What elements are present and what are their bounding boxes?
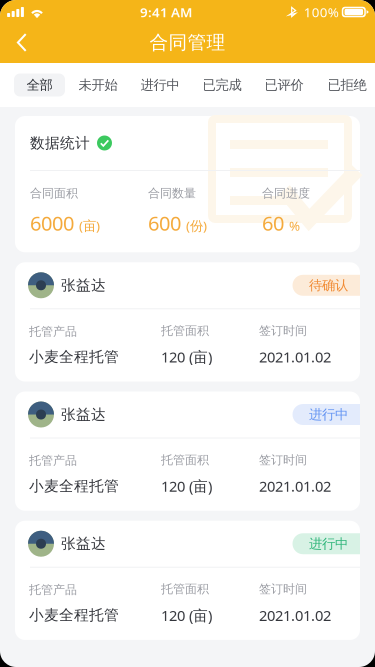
staticText: 托管产品 [29,324,77,339]
staticText: 待确认 [309,277,348,293]
staticText: 已拒绝 [327,77,366,93]
button[interactable]: 已拒绝 [326,73,368,96]
staticText: 托管面积 [161,582,209,596]
staticText: 合同进度 [262,186,310,201]
button[interactable]: 未开始 [77,73,119,96]
button[interactable]: 已完成 [201,73,243,96]
staticText: 合同面积 [30,186,78,201]
button[interactable]: 已评价 [263,73,305,96]
staticText: 已评价 [264,77,303,93]
staticText: 进行中 [309,535,348,552]
button[interactable]: 张益达 [15,521,360,640]
staticText: 张益达 [61,276,106,294]
staticText: 120 (亩) [161,605,212,625]
staticText: 2021.01.02 [259,476,331,496]
staticText: 进行中 [140,77,179,93]
button[interactable]: 张益达 [15,262,360,381]
button[interactable]: 全部 [14,73,65,96]
staticText: 签订时间 [259,323,307,338]
staticText: (亩) [79,217,100,234]
button[interactable]: 张益达 [15,391,360,511]
staticText: 托管面积 [161,323,209,338]
staticText: 托管产品 [29,453,77,468]
staticText: 2021.01.02 [259,347,331,366]
staticText: 小麦全程托管 [29,606,119,624]
staticText: 小麦全程托管 [29,477,119,495]
staticText: 120 (亩) [161,476,212,496]
staticText: 9:41 AM [140,3,192,21]
button[interactable]: Back [0,22,44,63]
staticText: 进行中 [309,406,348,423]
staticText: 数据统计 [30,134,90,152]
staticText: 6000 [30,210,74,236]
staticText: % [289,217,300,234]
staticText: 100% [304,3,339,21]
staticText: 已完成 [202,77,241,93]
button[interactable]: 进行中 [139,73,181,96]
staticText: 600 [148,210,181,236]
staticText: 未开始 [78,77,117,93]
staticText: (份) [186,217,207,234]
staticText: 120 (亩) [161,347,212,366]
staticText: 全部 [26,77,52,93]
staticText: 张益达 [61,405,106,423]
staticText: 小麦全程托管 [29,348,119,366]
staticText: 托管面积 [161,452,209,467]
staticText: 2021.01.02 [259,605,331,625]
staticText: 合同管理 [149,31,225,54]
staticText: 张益达 [61,535,106,553]
staticText: 托管产品 [29,582,77,597]
staticText: 60 [262,210,284,236]
staticText: 签订时间 [259,452,307,467]
staticText: 签订时间 [259,582,307,596]
staticText: 合同数量 [148,186,196,201]
